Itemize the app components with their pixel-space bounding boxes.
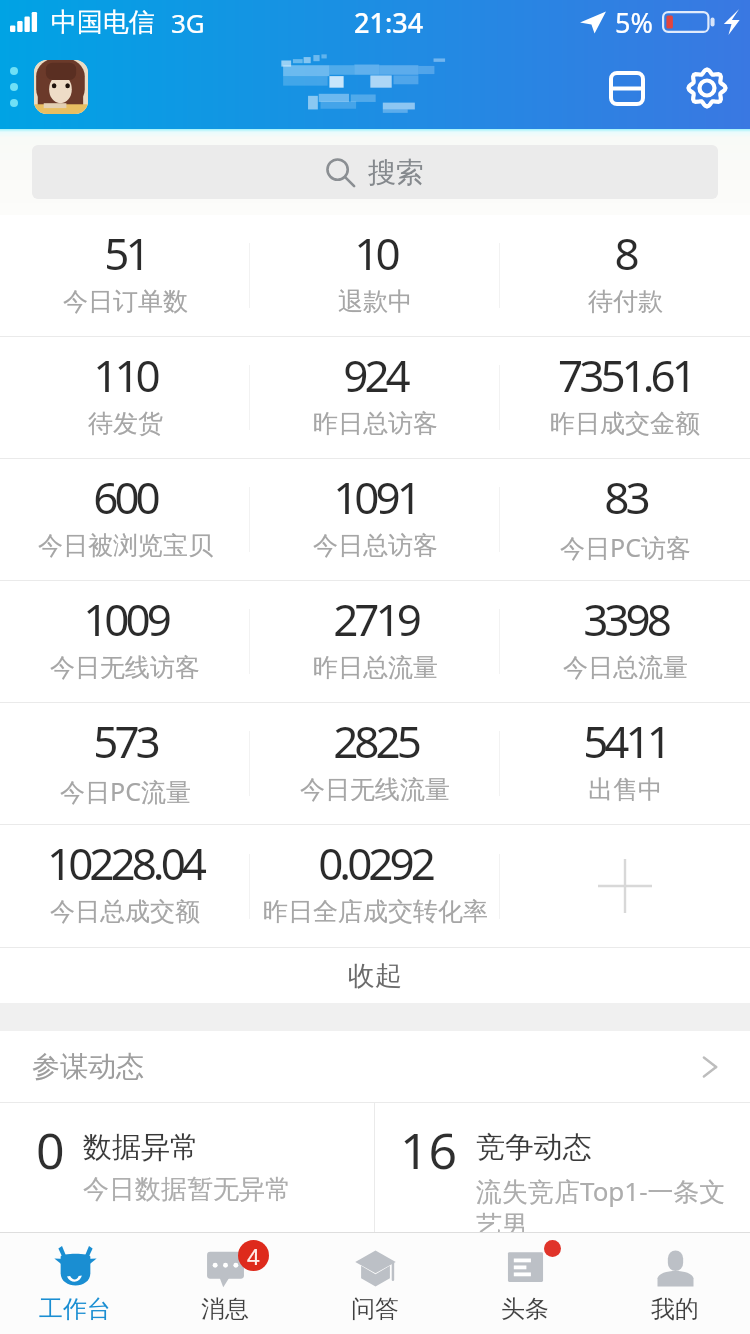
staticText: 2825 xyxy=(333,711,418,771)
staticText: 今日订单数 xyxy=(63,286,188,317)
staticText: 5% xyxy=(615,4,653,41)
staticText: 今日总流量 xyxy=(563,652,688,683)
staticText: 16 xyxy=(400,1116,458,1184)
button[interactable]: 1091 xyxy=(250,459,500,580)
staticText: 待付款 xyxy=(588,286,663,317)
staticText: 4 xyxy=(247,1241,260,1271)
button[interactable]: 110 xyxy=(0,337,250,458)
staticText: 3G xyxy=(171,5,205,40)
staticText: 中国电信 xyxy=(51,6,155,39)
staticText: 10 xyxy=(354,223,397,283)
staticText: 问答 xyxy=(351,1294,399,1324)
staticText: 昨日总访客 xyxy=(313,408,438,439)
button[interactable]: 10 xyxy=(250,215,500,336)
button[interactable]: 参谋动态 xyxy=(0,1031,750,1102)
staticText: 竞争动态 xyxy=(476,1129,592,1166)
button[interactable]: 16 xyxy=(375,1103,750,1232)
button[interactable]: 收起 xyxy=(0,948,750,1003)
button[interactable]: 工作台 xyxy=(0,1233,150,1334)
button[interactable]: 83 xyxy=(500,459,750,580)
staticText: 今日总成交额 xyxy=(50,896,200,927)
staticText: 退款中 xyxy=(338,286,413,317)
staticText: 今日无线流量 xyxy=(300,774,450,805)
button[interactable]: 头条 xyxy=(450,1233,600,1334)
button[interactable]: Switch layout xyxy=(598,58,656,116)
staticText: 110 xyxy=(93,345,157,405)
staticText: 待发货 xyxy=(88,408,163,439)
staticText: 流失竞店Top1-一条文艺男 xyxy=(476,1173,734,1232)
staticText: 8 xyxy=(614,223,636,283)
button[interactable]: 3398 xyxy=(500,581,750,702)
button[interactable]: 51 xyxy=(0,215,250,336)
staticText: 10228.04 xyxy=(47,833,203,893)
staticText: 21:34 xyxy=(354,4,424,41)
staticText: 参谋动态 xyxy=(32,1049,144,1084)
staticText: 今日数据暂无异常 xyxy=(83,1173,291,1206)
button[interactable]: 0.0292 xyxy=(250,825,500,947)
button[interactable]: Settings xyxy=(678,58,736,116)
staticText: 7351.61 xyxy=(558,345,693,405)
button[interactable]: 924 xyxy=(250,337,500,458)
staticText: 1009 xyxy=(83,589,168,649)
button[interactable]: 0 xyxy=(0,1103,374,1232)
staticText: 搜索 xyxy=(368,155,424,190)
staticText: 工作台 xyxy=(39,1294,111,1324)
staticText: 今日PC流量 xyxy=(60,774,191,808)
staticText: 83 xyxy=(604,467,647,527)
button[interactable]: 4 xyxy=(150,1233,300,1334)
button[interactable]: More options xyxy=(2,44,26,129)
staticText: 昨日总流量 xyxy=(313,652,438,683)
staticText: 昨日全店成交转化率 xyxy=(263,896,488,927)
staticText: 0 xyxy=(36,1116,65,1184)
button[interactable]: Profile avatar xyxy=(34,60,88,114)
staticText: 今日无线访客 xyxy=(50,652,200,683)
staticText: 收起 xyxy=(348,959,402,993)
staticText: 1091 xyxy=(333,467,418,527)
button[interactable]: 1009 xyxy=(0,581,250,702)
staticText: 今日PC访客 xyxy=(560,530,691,564)
staticText: 头条 xyxy=(501,1294,549,1324)
button[interactable]: 搜索 xyxy=(32,145,718,199)
staticText: 我的 xyxy=(651,1294,699,1324)
staticText: 3398 xyxy=(583,589,668,649)
staticText: 昨日成交金额 xyxy=(550,408,700,439)
staticText: 5411 xyxy=(583,711,668,771)
staticText: 2719 xyxy=(333,589,418,649)
button[interactable]: 2719 xyxy=(250,581,500,702)
staticText: 924 xyxy=(343,345,407,405)
button[interactable]: 573 xyxy=(0,703,250,824)
button[interactable]: 10228.04 xyxy=(0,825,250,947)
staticText: 0.0292 xyxy=(318,833,432,893)
staticText: 600 xyxy=(93,467,157,527)
button[interactable]: 5411 xyxy=(500,703,750,824)
staticText: 573 xyxy=(93,711,157,771)
button[interactable]: Add card xyxy=(500,825,750,947)
staticText: 数据异常 xyxy=(83,1129,199,1166)
button[interactable]: 7351.61 xyxy=(500,337,750,458)
staticText: 51 xyxy=(104,223,147,283)
button[interactable]: 2825 xyxy=(250,703,500,824)
button[interactable]: 8 xyxy=(500,215,750,336)
staticText: 出售中 xyxy=(588,774,663,805)
staticText: 今日总访客 xyxy=(313,530,438,561)
button[interactable]: 问答 xyxy=(300,1233,450,1334)
staticText: 消息 xyxy=(201,1294,249,1324)
button[interactable]: 我的 xyxy=(600,1233,750,1334)
button[interactable]: 600 xyxy=(0,459,250,580)
staticText: 今日被浏览宝贝 xyxy=(38,530,213,561)
